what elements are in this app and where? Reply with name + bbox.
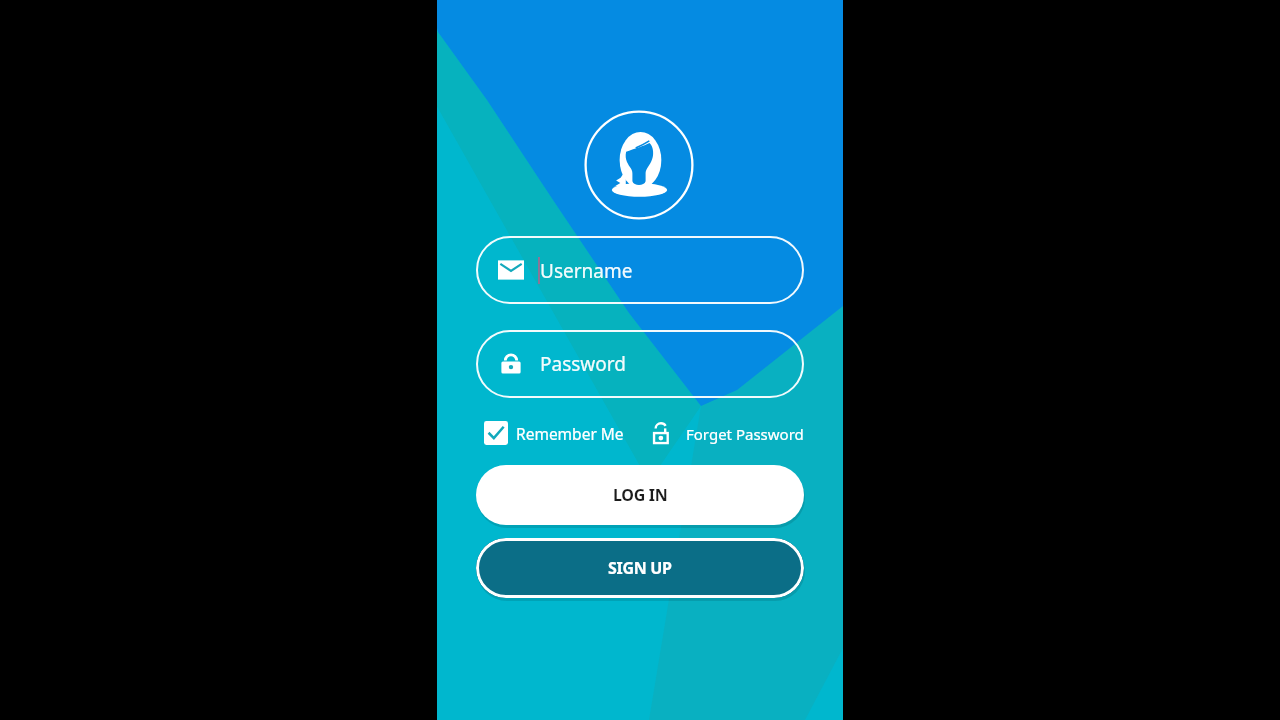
staticText: LOG IN (613, 484, 668, 506)
button[interactable]: Remember Me (484, 421, 624, 445)
button[interactable]: Username (476, 236, 804, 304)
button[interactable]: Forget Password (650, 421, 804, 446)
button[interactable]: SIGN UP (476, 538, 804, 598)
button[interactable]: LOG IN (476, 465, 804, 525)
staticText: Forget Password (686, 424, 804, 444)
staticText: SIGN UP (608, 557, 672, 579)
staticText: Password (540, 351, 626, 377)
other: Profile avatar (584, 110, 694, 220)
button[interactable]: Password (476, 330, 804, 398)
staticText: Username (540, 258, 633, 284)
staticText: Remember Me (516, 423, 624, 444)
